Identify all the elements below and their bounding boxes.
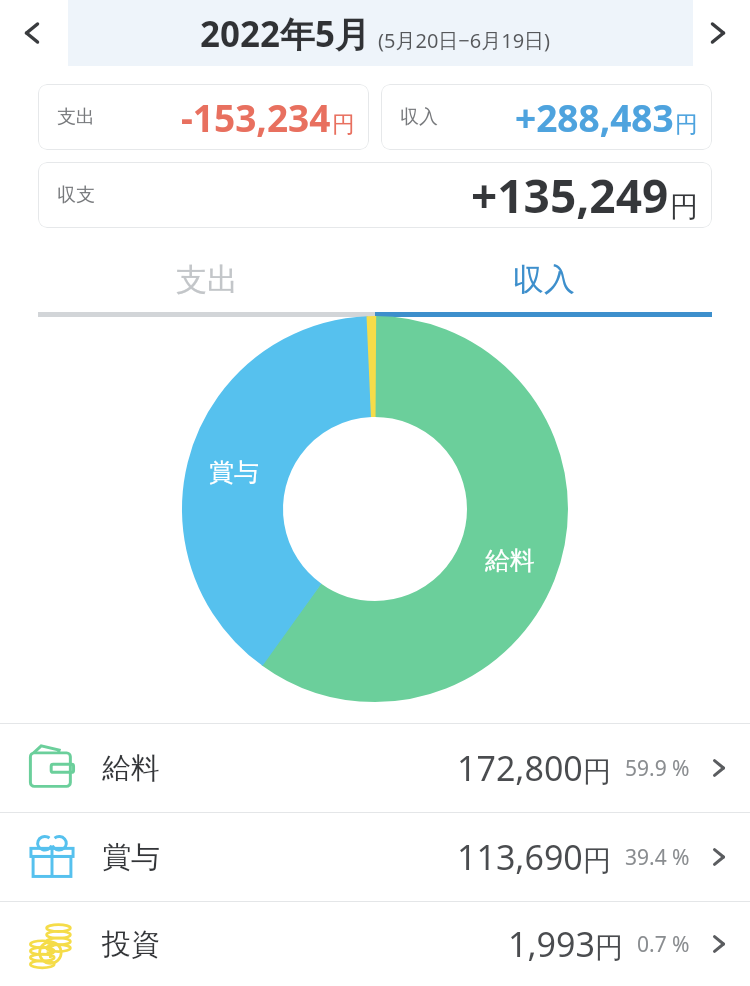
- button[interactable]: 収入: [375, 228, 712, 317]
- staticText: 支出: [176, 260, 238, 299]
- staticText: 59.9 %: [625, 754, 690, 783]
- staticText: 円: [670, 189, 698, 224]
- button[interactable]: 支出: [38, 84, 369, 150]
- staticText: 投資: [102, 926, 160, 963]
- staticText: +288,483: [515, 92, 674, 142]
- staticText: 0.7 %: [637, 930, 690, 959]
- staticText: 収支: [57, 183, 95, 207]
- staticText: 円: [583, 843, 611, 878]
- button[interactable]: 給料: [0, 724, 750, 812]
- button[interactable]: 収支: [38, 162, 712, 228]
- staticText: 賞与: [209, 457, 259, 488]
- staticText: 2022年5月: [200, 10, 371, 58]
- button[interactable]: Previous month: [0, 0, 64, 66]
- staticText: 支出: [57, 105, 95, 129]
- staticText: 1,993: [508, 921, 595, 967]
- staticText: 113,690: [457, 834, 583, 880]
- staticText: 172,800: [457, 745, 583, 791]
- staticText: 収入: [400, 105, 438, 129]
- staticText: 収入: [513, 260, 575, 299]
- button[interactable]: Next month: [686, 0, 750, 66]
- staticText: 円: [583, 754, 611, 789]
- staticText: 給料: [102, 750, 160, 787]
- staticText: 円: [332, 110, 355, 139]
- staticText: 39.4 %: [625, 843, 690, 872]
- staticText: 円: [595, 930, 623, 965]
- staticText: -153,234: [181, 92, 331, 142]
- button[interactable]: 賞与: [0, 813, 750, 901]
- staticText: +135,249: [471, 164, 669, 227]
- button[interactable]: 支出: [38, 228, 375, 317]
- staticText: (5月20日−6月19日): [378, 27, 551, 54]
- staticText: 賞与: [102, 839, 160, 876]
- button[interactable]: 投資: [0, 902, 750, 986]
- button[interactable]: 収入: [381, 84, 712, 150]
- staticText: 給料: [485, 545, 535, 576]
- staticText: 円: [675, 110, 698, 139]
